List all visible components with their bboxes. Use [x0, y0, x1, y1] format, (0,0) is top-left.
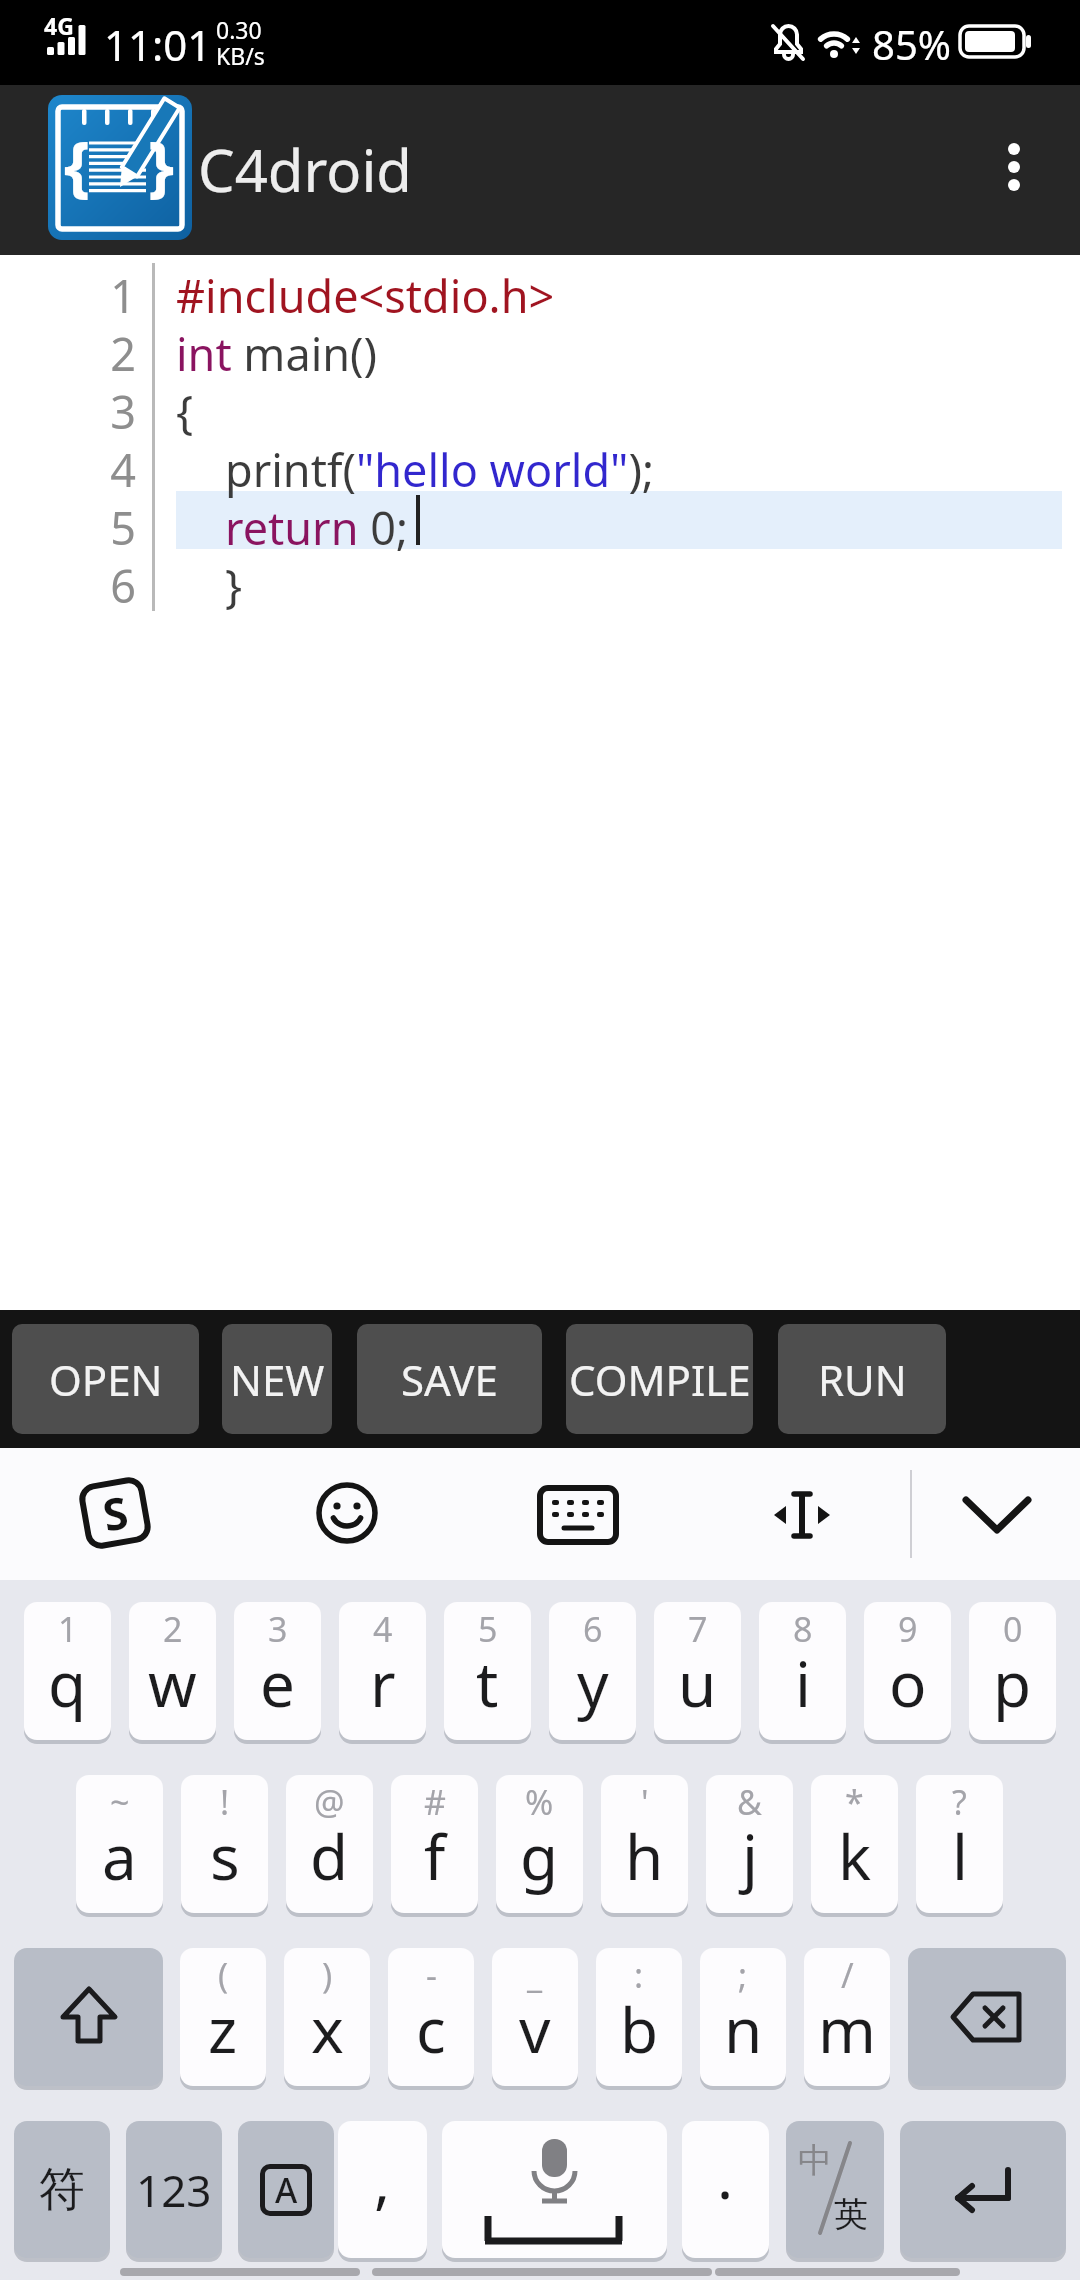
- button[interactable]: [966, 121, 1062, 217]
- staticText: 英: [834, 2193, 868, 2236]
- button[interactable]: :: [596, 1948, 682, 2086]
- staticText: 1: [0, 265, 136, 326]
- staticText: {: [64, 119, 91, 209]
- staticText: :: [634, 1952, 644, 1998]
- button[interactable]: [900, 2121, 1066, 2258]
- staticText: ': [641, 1779, 649, 1825]
- staticText: {: [176, 381, 194, 442]
- staticText: KB/s: [216, 40, 265, 71]
- button[interactable]: [540, 1488, 616, 1542]
- button[interactable]: /: [804, 1948, 890, 2086]
- staticText: u: [678, 1641, 717, 1725]
- button[interactable]: [314, 1480, 380, 1546]
- staticText: 3: [268, 1606, 288, 1652]
- staticText: ,: [374, 2139, 391, 2221]
- button[interactable]: OPEN: [12, 1324, 199, 1434]
- staticText: r: [370, 1641, 396, 1725]
- staticText: 4: [373, 1606, 393, 1652]
- staticText: q: [48, 1641, 87, 1725]
- button[interactable]: 1: [24, 1602, 111, 1740]
- staticText: ): [322, 1952, 333, 1998]
- staticText: A: [275, 2167, 298, 2213]
- button[interactable]: [764, 1488, 840, 1542]
- staticText: ?: [952, 1779, 967, 1825]
- staticText: f: [424, 1814, 446, 1898]
- staticText: g: [520, 1814, 559, 1898]
- staticText: *: [845, 1779, 864, 1825]
- staticText: b: [620, 1987, 659, 2071]
- button[interactable]: #: [391, 1775, 478, 1913]
- staticText: 6: [0, 555, 136, 616]
- staticText: z: [208, 1987, 238, 2071]
- button[interactable]: 4: [339, 1602, 426, 1740]
- button[interactable]: ~: [76, 1775, 163, 1913]
- button[interactable]: .: [682, 2121, 769, 2258]
- button[interactable]: 6: [549, 1602, 636, 1740]
- staticText: %: [525, 1779, 554, 1825]
- button[interactable]: ,: [338, 2121, 427, 2258]
- staticText: -: [426, 1952, 437, 1998]
- button[interactable]: 7: [654, 1602, 741, 1740]
- staticText: 5: [478, 1606, 498, 1652]
- staticText: x: [311, 1987, 344, 2071]
- button[interactable]: -: [388, 1948, 474, 2086]
- button[interactable]: [956, 1488, 1038, 1542]
- button[interactable]: [442, 2121, 667, 2258]
- button[interactable]: _: [492, 1948, 578, 2086]
- staticText: NEW: [230, 1351, 325, 1408]
- button[interactable]: ;: [700, 1948, 786, 2086]
- button[interactable]: COMPILE: [566, 1324, 753, 1434]
- staticText: 11:01: [104, 16, 212, 73]
- button[interactable]: A: [238, 2121, 334, 2258]
- button[interactable]: 3: [234, 1602, 321, 1740]
- staticText: ;: [738, 1952, 748, 1998]
- staticText: #include<stdio.h>: [176, 265, 555, 326]
- staticText: 4: [0, 439, 136, 500]
- button[interactable]: S: [77, 1475, 153, 1551]
- button[interactable]: !: [181, 1775, 268, 1913]
- staticText: /: [841, 1952, 854, 1998]
- button[interactable]: 符: [14, 2121, 110, 2258]
- staticText: v: [519, 1987, 551, 2071]
- button[interactable]: 9: [864, 1602, 951, 1740]
- staticText: 符: [39, 2161, 85, 2219]
- staticText: i: [795, 1641, 811, 1725]
- staticText: 5: [0, 497, 136, 558]
- staticText: s: [210, 1814, 240, 1898]
- button[interactable]: 0: [969, 1602, 1056, 1740]
- staticText: ~: [110, 1779, 130, 1825]
- button[interactable]: 8: [759, 1602, 846, 1740]
- staticText: 0: [1003, 1606, 1023, 1652]
- button[interactable]: [908, 1948, 1066, 2086]
- staticText: 6: [583, 1606, 603, 1652]
- staticText: .: [717, 2135, 734, 2217]
- button[interactable]: %: [496, 1775, 583, 1913]
- button[interactable]: ?: [916, 1775, 1003, 1913]
- staticText: SAVE: [401, 1351, 498, 1408]
- button[interactable]: &: [706, 1775, 793, 1913]
- staticText: 8: [793, 1606, 813, 1652]
- button[interactable]: SAVE: [357, 1324, 542, 1434]
- staticText: !: [220, 1779, 230, 1825]
- staticText: 9: [898, 1606, 918, 1652]
- button[interactable]: RUN: [778, 1324, 946, 1434]
- button[interactable]: *: [811, 1775, 898, 1913]
- button[interactable]: (: [180, 1948, 266, 2086]
- staticText: &: [737, 1779, 762, 1825]
- button[interactable]: [14, 1948, 163, 2086]
- button[interactable]: ): [284, 1948, 370, 2086]
- staticText: 4G: [44, 10, 74, 41]
- button[interactable]: 2: [129, 1602, 216, 1740]
- button[interactable]: 5: [444, 1602, 531, 1740]
- button[interactable]: 123: [126, 2121, 222, 2258]
- staticText: c: [416, 1987, 446, 2071]
- staticText: 1: [58, 1606, 78, 1652]
- button[interactable]: 中: [786, 2121, 884, 2258]
- staticText: 85%: [872, 17, 951, 71]
- button[interactable]: {: [48, 95, 192, 240]
- staticText: #: [424, 1779, 446, 1825]
- button[interactable]: @: [286, 1775, 373, 1913]
- button[interactable]: NEW: [222, 1324, 332, 1434]
- button[interactable]: ': [601, 1775, 688, 1913]
- staticText: m: [818, 1987, 876, 2071]
